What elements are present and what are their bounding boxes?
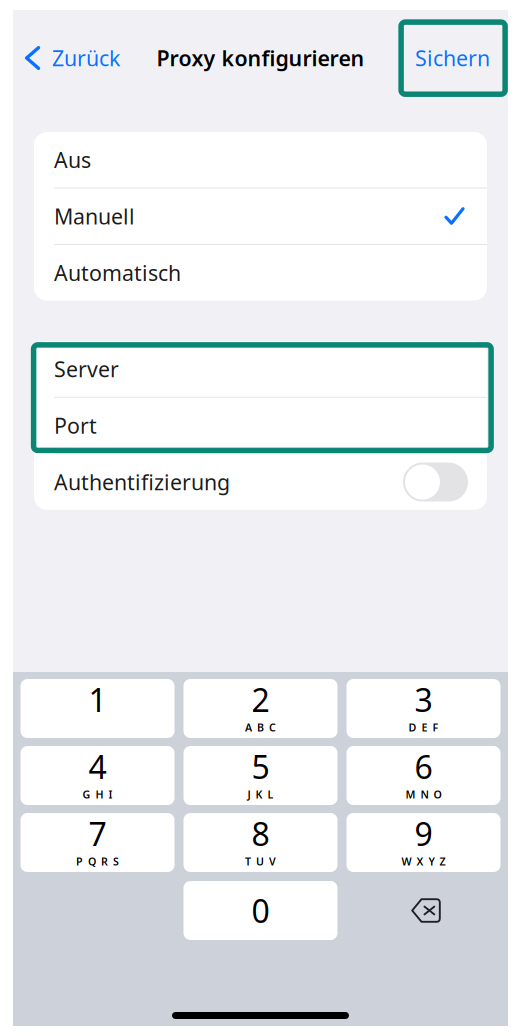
button[interactable]: 6 [346, 746, 500, 805]
button[interactable]: 3 [346, 679, 500, 738]
button[interactable]: 7 [20, 813, 174, 872]
staticText: GHI [82, 787, 112, 801]
staticText: Authentifizierung [54, 468, 230, 496]
staticText: DEF [408, 720, 438, 734]
button[interactable]: 2 [183, 679, 337, 738]
button[interactable]: 9 [346, 813, 500, 872]
staticText: 6 [414, 745, 432, 788]
staticText: 4 [88, 745, 106, 788]
staticText: Automatisch [54, 259, 181, 287]
button[interactable]: Löschen [346, 881, 500, 940]
button[interactable]: Server [34, 341, 487, 397]
staticText: 8 [251, 812, 269, 855]
staticText: Server [54, 355, 119, 383]
staticText: Port [54, 411, 97, 440]
button[interactable]: Manuell [34, 188, 487, 244]
button[interactable]: Automatisch [34, 245, 487, 300]
button[interactable]: Port [34, 398, 487, 453]
staticText: 7 [88, 812, 106, 855]
staticText: TUV [245, 854, 276, 868]
button[interactable]: Zurück [13, 28, 130, 88]
staticText: 2 [251, 678, 269, 721]
staticText: 1 [88, 678, 106, 721]
staticText: 5 [251, 745, 269, 788]
staticText: PQRS [76, 854, 119, 868]
button[interactable]: 8 [183, 813, 337, 872]
button[interactable]: Authentifizierung [403, 463, 468, 502]
staticText: JKL [247, 787, 273, 801]
staticText: 9 [414, 812, 432, 855]
staticText: MNO [405, 787, 441, 801]
staticText: 3 [414, 678, 432, 721]
button[interactable]: 1 [20, 679, 174, 738]
button[interactable]: 4 [20, 746, 174, 805]
staticText: WXYZ [401, 854, 445, 868]
staticText: 0 [251, 889, 269, 932]
button[interactable]: 5 [183, 746, 337, 805]
staticText: Aus [54, 146, 91, 174]
staticText: Proxy konfigurieren [156, 44, 364, 72]
button[interactable]: 0 [183, 881, 337, 940]
staticText: Sichern [415, 44, 490, 72]
button[interactable]: Aus [34, 132, 487, 187]
staticText: ABC [245, 720, 276, 734]
staticText: Zurück [52, 44, 120, 72]
staticText: Manuell [54, 202, 135, 230]
button[interactable]: Sichern [404, 28, 508, 88]
